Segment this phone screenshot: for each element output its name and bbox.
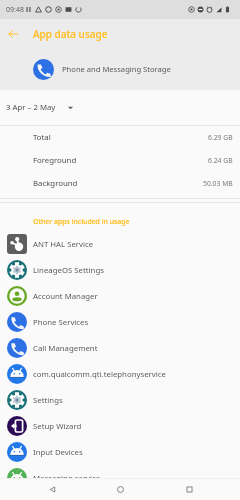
staticText: Other apps included in usage (33, 217, 130, 226)
button[interactable]: Home (110, 479, 130, 499)
staticText: LineageOS Settings (33, 265, 104, 276)
button[interactable]: 3 Apr – 2 May (0, 90, 240, 125)
staticText: com.qualcomm.qti.telephonyservice (33, 369, 166, 380)
staticText: Input Devices (33, 447, 83, 458)
button[interactable]: Account Manager (0, 283, 240, 309)
staticText: 6.24 GB (208, 156, 233, 165)
staticText: 6.29 GB (208, 133, 233, 142)
button[interactable]: Back (3, 24, 23, 44)
staticText: Account Manager (33, 291, 98, 302)
button[interactable]: Total (0, 126, 240, 149)
button[interactable]: Foreground (0, 149, 240, 172)
button[interactable]: Phone Services (0, 309, 240, 335)
button[interactable]: Setup Wizard (0, 413, 240, 439)
button[interactable]: Settings (0, 387, 240, 413)
button[interactable]: Input Devices (0, 439, 240, 465)
staticText: Total (33, 132, 51, 143)
staticText: Phone Services (33, 317, 89, 328)
staticText: Call Management (33, 343, 98, 354)
button[interactable]: Back (42, 479, 62, 499)
button[interactable]: Call Management (0, 335, 240, 361)
staticText: Setup Wizard (33, 421, 82, 432)
staticText: 3 Apr – 2 May (6, 102, 56, 113)
button[interactable]: Recents (179, 479, 199, 499)
button[interactable]: com.qualcomm.qti.telephonyservice (0, 361, 240, 387)
staticText: Messaging service (33, 473, 101, 484)
staticText: ANT HAL Service (33, 239, 94, 250)
button[interactable]: Phone and Messaging Storage (0, 48, 240, 90)
staticText: 50.03 MB (203, 179, 233, 188)
staticText: Settings (33, 395, 63, 406)
staticText: 09:48 (6, 5, 24, 15)
button[interactable]: ANT HAL Service (0, 231, 240, 257)
staticText: App data usage (33, 27, 108, 41)
button[interactable]: Messaging service (0, 465, 240, 491)
button[interactable]: LineageOS Settings (0, 257, 240, 283)
staticText: Background (33, 178, 78, 189)
staticText: Phone and Messaging Storage (62, 64, 171, 74)
button[interactable]: Background (0, 172, 240, 195)
staticText: Foreground (33, 155, 77, 166)
